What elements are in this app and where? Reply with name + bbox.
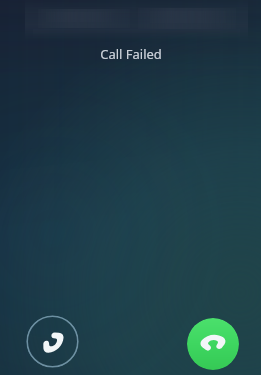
staticText: Call Failed [100, 45, 162, 63]
button[interactable]: Answer call [187, 318, 239, 370]
button[interactable]: Decline call [26, 315, 79, 368]
